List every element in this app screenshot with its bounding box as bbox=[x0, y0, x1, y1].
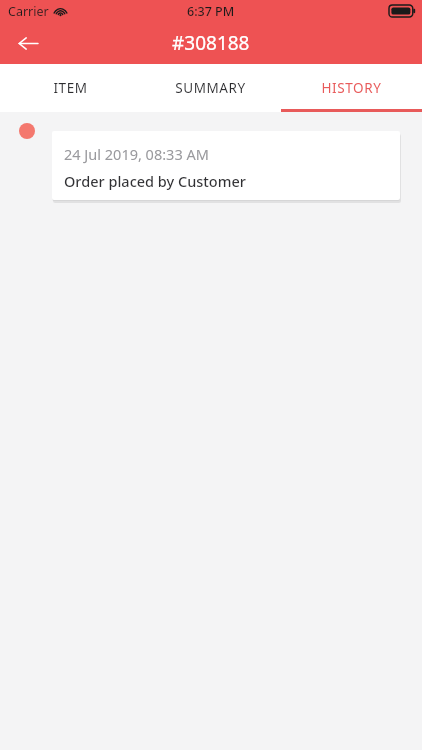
staticText: HISTORY bbox=[321, 79, 382, 97]
staticText: Order placed by Customer bbox=[64, 171, 246, 191]
staticText: ITEM bbox=[53, 79, 88, 97]
button[interactable]: 24 Jul 2019, 08:33 AM bbox=[52, 131, 400, 200]
staticText: #308188 bbox=[172, 30, 250, 56]
button[interactable]: Back bbox=[10, 25, 46, 61]
staticText: Carrier bbox=[8, 3, 49, 20]
button[interactable]: SUMMARY bbox=[140, 64, 281, 112]
staticText: 24 Jul 2019, 08:33 AM bbox=[64, 144, 209, 164]
staticText: SUMMARY bbox=[175, 79, 246, 97]
button[interactable]: ITEM bbox=[0, 64, 140, 112]
button[interactable]: HISTORY bbox=[281, 64, 422, 112]
staticText: 6:37 PM bbox=[187, 3, 235, 20]
